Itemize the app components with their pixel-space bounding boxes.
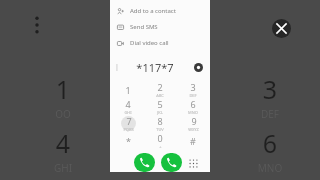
staticText: PQRS xyxy=(123,127,134,132)
staticText: 4 xyxy=(42,126,84,160)
button[interactable]: Dial video call xyxy=(110,35,210,51)
button[interactable]: # xyxy=(178,132,208,149)
staticText: 1 xyxy=(125,84,131,96)
staticText: ABC xyxy=(156,93,164,98)
staticText: 7 xyxy=(126,115,132,127)
button[interactable]: 3 xyxy=(249,72,291,121)
button[interactable]: 7 xyxy=(113,115,143,132)
staticText: 3 xyxy=(249,72,291,106)
staticText: Dial video call xyxy=(130,39,169,47)
button[interactable]: 9 xyxy=(178,115,208,132)
button[interactable]: 1 xyxy=(42,72,84,121)
staticText: 2 xyxy=(157,81,163,93)
button[interactable]: Add to a contact xyxy=(110,3,210,19)
staticText: MNO xyxy=(188,110,198,115)
staticText: DEF xyxy=(189,93,197,98)
button[interactable]: 6 xyxy=(178,98,208,115)
staticText: * xyxy=(126,135,131,147)
staticText: | xyxy=(115,62,119,72)
staticText: 0 xyxy=(157,132,163,144)
staticText: 9 xyxy=(191,115,197,127)
staticText: 4 xyxy=(125,98,131,110)
staticText: 6 xyxy=(190,98,196,110)
button[interactable]: Close xyxy=(272,19,291,38)
staticText: GHI xyxy=(124,110,132,115)
staticText: MNO xyxy=(249,161,291,175)
button[interactable]: 6 xyxy=(249,126,291,175)
button[interactable]: 8 xyxy=(145,115,175,132)
staticText: 6 xyxy=(249,126,291,160)
button[interactable]: 5 xyxy=(145,98,175,115)
staticText: TUV xyxy=(156,127,164,132)
staticText: 3 xyxy=(190,81,196,93)
staticText: Add to a contact xyxy=(130,7,176,15)
staticText: # xyxy=(190,135,196,147)
button[interactable]: * xyxy=(113,132,143,149)
staticText: + xyxy=(159,144,162,149)
button[interactable]: Send SMS xyxy=(110,19,210,35)
button[interactable]: More options xyxy=(30,13,44,37)
button[interactable]: 4 xyxy=(42,126,84,175)
button[interactable]: Backspace xyxy=(191,60,205,74)
button[interactable]: 4 xyxy=(113,98,143,115)
staticText: 1 xyxy=(42,72,84,106)
button[interactable]: Call with SIM 1 xyxy=(134,153,155,172)
staticText: JKL xyxy=(157,110,163,115)
staticText: *117*7 xyxy=(136,60,174,75)
button[interactable]: 2 xyxy=(145,81,175,98)
button[interactable]: 0 xyxy=(145,132,175,149)
staticText: 8 xyxy=(157,115,163,127)
staticText: GHI xyxy=(42,161,84,175)
button[interactable]: Hide keypad xyxy=(184,154,202,172)
button[interactable]: Call with SIM 2 xyxy=(161,153,182,172)
staticText: DEF xyxy=(249,107,291,121)
button[interactable]: 1 xyxy=(113,81,143,98)
staticText: WXYZ xyxy=(188,127,199,132)
button[interactable]: 3 xyxy=(178,81,208,98)
staticText: 5 xyxy=(157,98,163,110)
staticText: Send SMS xyxy=(130,23,158,31)
